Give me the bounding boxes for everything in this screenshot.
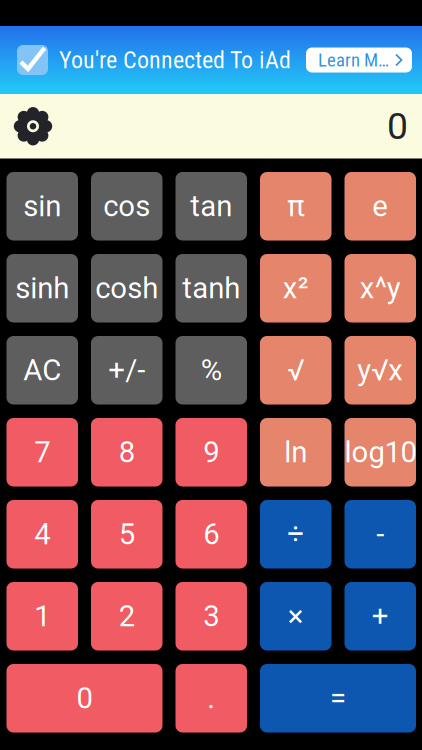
button[interactable]: AC: [6, 336, 78, 404]
staticText: sinh: [15, 271, 69, 305]
button[interactable]: .: [175, 664, 247, 732]
staticText: +/-: [108, 353, 145, 387]
button[interactable]: 7: [6, 418, 78, 486]
button[interactable]: 2: [91, 582, 162, 650]
button[interactable]: 1: [6, 582, 78, 650]
staticText: cosh: [95, 271, 158, 305]
button[interactable]: ÷: [260, 500, 331, 568]
button[interactable]: 0: [6, 664, 162, 732]
staticText: tanh: [182, 271, 240, 305]
button[interactable]: π: [260, 172, 331, 240]
staticText: ÷: [287, 517, 304, 551]
button[interactable]: +: [344, 582, 416, 650]
button[interactable]: sinh: [6, 254, 78, 322]
staticText: ln: [284, 435, 307, 469]
staticText: 4: [34, 517, 50, 551]
staticText: You're Connected To iAd: [59, 46, 291, 74]
button[interactable]: tanh: [175, 254, 247, 322]
staticText: +: [372, 599, 389, 633]
button[interactable]: y√x: [344, 336, 416, 404]
staticText: .: [207, 681, 215, 715]
button[interactable]: e: [344, 172, 416, 240]
button[interactable]: sin: [6, 172, 78, 240]
button[interactable]: =: [260, 664, 416, 732]
button[interactable]: 5: [91, 500, 162, 568]
button[interactable]: ln: [260, 418, 331, 486]
staticText: Learn More: [318, 49, 396, 71]
staticText: 5: [119, 517, 135, 551]
button[interactable]: %: [175, 336, 247, 404]
staticText: π: [287, 189, 304, 223]
button[interactable]: √: [260, 336, 331, 404]
staticText: 1: [34, 599, 50, 633]
button[interactable]: log10: [344, 418, 416, 486]
button[interactable]: +/-: [91, 336, 162, 404]
button[interactable]: cos: [91, 172, 162, 240]
staticText: 0: [387, 104, 408, 148]
button[interactable]: 9: [175, 418, 247, 486]
button[interactable]: ×: [260, 582, 331, 650]
staticText: log10: [344, 435, 416, 469]
staticText: y√x: [357, 353, 403, 387]
staticText: √: [287, 353, 304, 387]
staticText: x^y: [360, 271, 401, 305]
staticText: ×: [288, 599, 304, 633]
staticText: 3: [203, 599, 219, 633]
staticText: 8: [119, 435, 135, 469]
button[interactable]: 4: [6, 500, 78, 568]
staticText: sin: [23, 189, 61, 223]
button[interactable]: 8: [91, 418, 162, 486]
staticText: x²: [283, 271, 309, 305]
button[interactable]: 3: [175, 582, 247, 650]
staticText: AC: [23, 353, 61, 387]
button[interactable]: tan: [175, 172, 247, 240]
staticText: e: [372, 189, 388, 223]
button[interactable]: x^y: [344, 254, 416, 322]
button[interactable]: cosh: [91, 254, 162, 322]
staticText: 6: [203, 517, 219, 551]
staticText: tan: [190, 189, 232, 223]
staticText: -: [376, 517, 384, 551]
staticText: 7: [34, 435, 50, 469]
staticText: cos: [103, 189, 150, 223]
staticText: %: [201, 353, 222, 387]
button[interactable]: Learn More: [306, 47, 412, 72]
staticText: =: [330, 681, 346, 715]
staticText: 0: [76, 681, 92, 715]
button[interactable]: 6: [175, 500, 247, 568]
staticText: 2: [119, 599, 135, 633]
button[interactable]: Settings: [0, 107, 52, 145]
button[interactable]: x²: [260, 254, 331, 322]
button[interactable]: -: [344, 500, 416, 568]
staticText: 9: [203, 435, 219, 469]
